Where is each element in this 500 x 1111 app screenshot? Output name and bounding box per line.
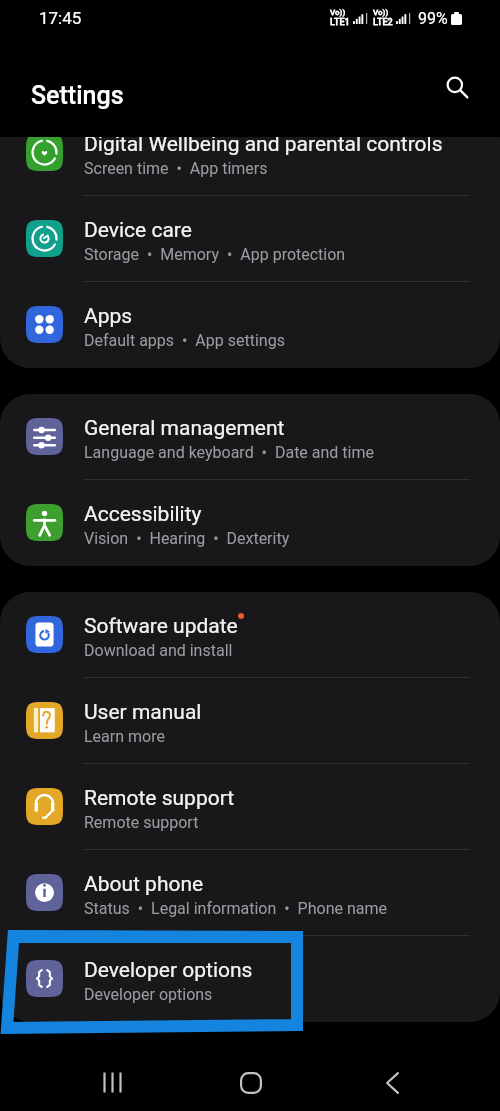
staticText: Learn more [84,727,165,746]
staticText: 17:45 [39,8,82,28]
staticText: Vo)) [330,8,346,17]
staticText: Language and keyboard • Date and time [84,443,374,462]
staticText: Remote support [84,786,235,811]
staticText: Storage • Memory • App protection [84,245,346,264]
staticText: LTE1 [330,17,350,28]
button[interactable]: Device care [0,196,500,282]
staticText: Vision • Hearing • Dexterity [84,529,290,548]
staticText: Developer options [84,958,253,983]
staticText: Download and install [84,641,233,660]
staticText: Settings [31,81,124,110]
button[interactable]: Apps [0,282,500,368]
button[interactable]: Remote support [0,764,500,850]
button[interactable]: Search [440,70,474,104]
staticText: Default apps • App settings [84,331,285,350]
staticText: About phone [84,872,204,897]
button[interactable]: Recent apps [72,1058,152,1107]
staticText: Developer options [84,985,213,1004]
button[interactable]: Developer options [0,936,500,1022]
button[interactable]: General management [0,394,500,480]
staticText: LTE2 [373,17,393,28]
staticText: Device care [84,218,192,243]
button[interactable]: User manual [0,678,500,764]
staticText: Apps [84,304,133,329]
staticText: General management [84,416,285,441]
button[interactable]: Software update [0,592,500,678]
staticText: Screen time • App timers [84,159,268,178]
staticText: Digital Wellbeing and parental controls [84,137,443,157]
staticText: User manual [84,700,202,725]
staticText: Vo)) [373,8,389,17]
staticText: Remote support [84,813,199,832]
staticText: Accessibility [84,502,202,527]
staticText: 99% [418,9,448,28]
button[interactable]: Accessibility [0,480,500,566]
staticText: Software update [84,614,238,639]
staticText: Status • Legal information • Phone name [84,899,387,918]
button[interactable]: Back [352,1058,432,1107]
button[interactable]: Digital Wellbeing and parental controls [0,137,500,196]
button[interactable]: About phone [0,850,500,936]
button[interactable]: Home [211,1058,291,1107]
